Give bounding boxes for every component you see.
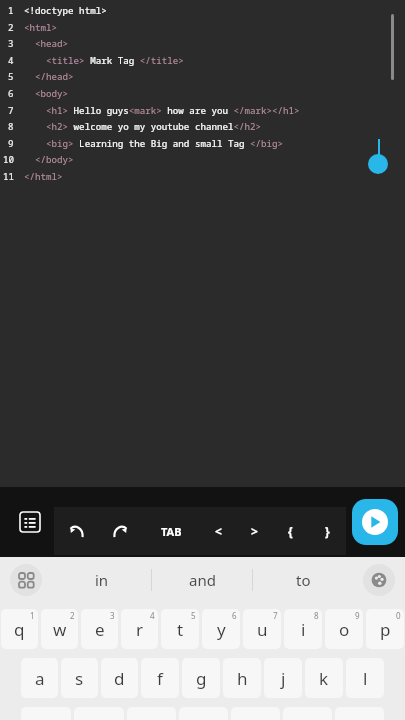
staticText: 5 — [8, 70, 14, 83]
staticText: in — [95, 570, 109, 590]
staticText: r — [136, 618, 144, 641]
staticText: } — [325, 523, 330, 539]
staticText: 3 — [110, 610, 115, 621]
button[interactable]: t — [161, 609, 199, 649]
button[interactable]: g — [182, 658, 220, 698]
staticText: g — [196, 667, 207, 690]
button[interactable]: y — [202, 609, 240, 649]
staticText: 9 — [355, 610, 360, 621]
staticText: s — [75, 667, 84, 690]
button[interactable]: l — [346, 658, 384, 698]
staticText: <big> Learning the Big and small Tag </b… — [24, 137, 284, 150]
staticText: p — [380, 618, 391, 641]
button[interactable]: < — [200, 507, 236, 555]
staticText: 6 — [232, 610, 237, 621]
staticText: <body> — [24, 87, 69, 100]
button[interactable]: d — [101, 658, 138, 698]
staticText: 8 — [8, 120, 14, 133]
button[interactable]: i — [284, 609, 322, 649]
staticText: 1 — [30, 610, 35, 621]
staticText: j — [281, 667, 286, 690]
staticText: q — [14, 618, 25, 641]
staticText: 2 — [8, 21, 14, 34]
staticText: </body> — [24, 153, 74, 166]
staticText: e — [95, 618, 105, 641]
staticText: <html> — [24, 21, 58, 34]
staticText: a — [35, 667, 45, 690]
button[interactable]: in — [52, 557, 151, 603]
button[interactable]: and — [152, 557, 252, 603]
staticText: </html> — [24, 170, 63, 183]
button[interactable]: q — [1, 609, 38, 649]
button[interactable]: s — [61, 658, 98, 698]
button[interactable]: Themes — [353, 557, 405, 603]
staticText: <h1> Hello guys<mark> how are you </mark… — [24, 104, 300, 117]
staticText: > — [251, 523, 258, 539]
staticText: <title> Mark Tag </title> — [24, 54, 184, 67]
staticText: k — [319, 667, 329, 690]
button[interactable]: f — [141, 658, 179, 698]
button[interactable]: Keyboard options — [0, 557, 52, 603]
button[interactable]: to — [253, 557, 353, 603]
staticText: u — [257, 618, 268, 641]
staticText: i — [301, 618, 306, 641]
staticText: < — [215, 523, 222, 539]
button[interactable]: p — [366, 609, 404, 649]
staticText: t — [177, 618, 184, 641]
button[interactable]: Undo — [54, 507, 98, 555]
button[interactable]: a — [21, 658, 58, 698]
button[interactable]: e — [81, 609, 118, 649]
button[interactable]: w — [41, 609, 78, 649]
staticText: 8 — [314, 610, 319, 621]
button[interactable]: r — [121, 609, 158, 649]
staticText: and — [189, 570, 216, 590]
staticText: d — [114, 667, 125, 690]
staticText: f — [157, 667, 163, 690]
button[interactable]: h — [223, 658, 261, 698]
button[interactable]: { — [272, 507, 309, 555]
staticText: y — [217, 618, 226, 641]
button[interactable]: o — [325, 609, 363, 649]
staticText: 11 — [3, 170, 15, 183]
button[interactable]: k — [305, 658, 343, 698]
staticText: 6 — [8, 87, 14, 100]
button[interactable]: Redo — [98, 507, 142, 555]
staticText: <h2> welcome yo my youtube channel</h2> — [24, 120, 262, 133]
button[interactable]: j — [264, 658, 302, 698]
staticText: 4 — [8, 54, 14, 67]
staticText: </head> — [24, 70, 74, 83]
staticText: 7 — [8, 104, 14, 117]
staticText: 7 — [273, 610, 278, 621]
staticText: 3 — [8, 37, 14, 50]
button[interactable]: u — [243, 609, 281, 649]
staticText: 10 — [3, 153, 15, 166]
staticText: w — [53, 618, 67, 641]
staticText: 4 — [150, 610, 155, 621]
button[interactable]: TAB — [142, 507, 200, 555]
staticText: l — [363, 667, 368, 690]
button[interactable]: > — [236, 507, 272, 555]
staticText: <!doctype html> — [24, 4, 107, 17]
staticText: <head> — [24, 37, 69, 50]
staticText: 2 — [70, 610, 75, 621]
button[interactable]: File list — [12, 504, 48, 540]
staticText: TAB — [161, 524, 182, 539]
button[interactable]: } — [309, 507, 346, 555]
staticText: 9 — [8, 137, 14, 150]
staticText: { — [288, 523, 293, 539]
button[interactable]: Run — [352, 499, 398, 545]
